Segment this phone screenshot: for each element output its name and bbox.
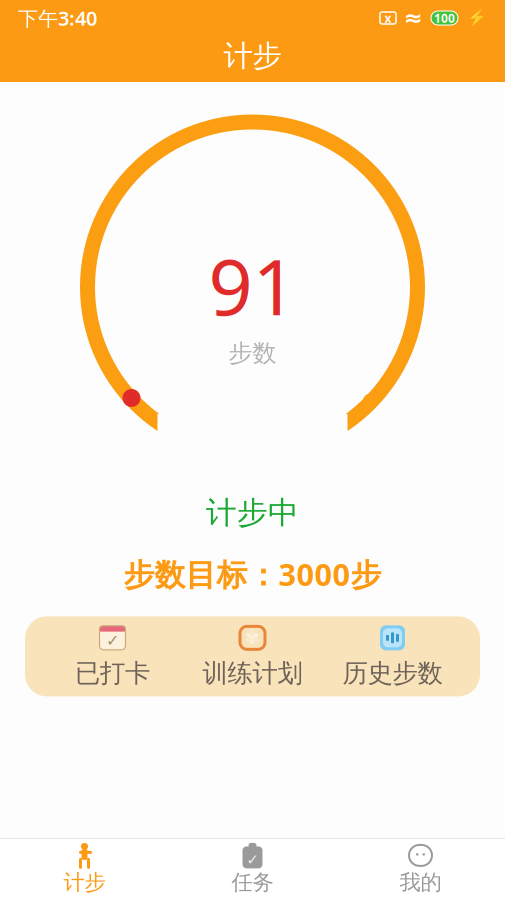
staticText: 任务 <box>231 869 273 896</box>
staticText: 100 <box>434 10 455 26</box>
button[interactable]: ✾ <box>182 620 322 692</box>
button[interactable]: 我的 <box>336 839 504 899</box>
staticText: ≈ <box>404 5 423 31</box>
staticText: 我的 <box>399 869 441 896</box>
staticText: ⚡ <box>467 9 487 27</box>
button[interactable]: 历史步数 <box>322 620 462 692</box>
staticText: ✾ <box>245 628 260 648</box>
staticText: x <box>384 10 391 26</box>
staticText: 91 <box>208 234 296 337</box>
button[interactable]: ✓ <box>42 620 182 692</box>
staticText: 计步 <box>223 38 281 74</box>
staticText: 步数目标：3000步 <box>123 554 381 594</box>
staticText: 历史步数 <box>342 658 442 689</box>
staticText: ✓ <box>246 851 258 868</box>
button[interactable]: 计步 <box>0 839 168 899</box>
staticText: ✓ <box>106 632 119 650</box>
staticText: 计步中 <box>206 494 299 532</box>
staticText: 计步 <box>63 869 105 896</box>
staticText: 步数 <box>228 339 276 368</box>
staticText: 已打卡 <box>75 658 150 689</box>
staticText: 训练计划 <box>202 658 302 689</box>
button[interactable]: ✓ <box>168 839 336 899</box>
staticText: 下午3:40 <box>18 5 97 31</box>
